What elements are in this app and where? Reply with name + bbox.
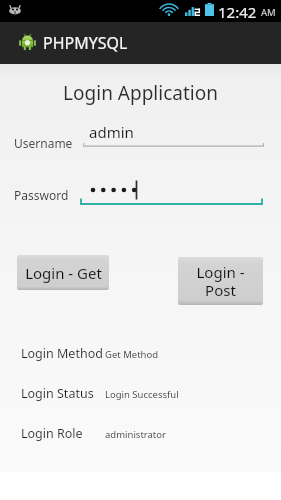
staticText: Login Role: [21, 425, 83, 442]
button[interactable]: Login - Post: [178, 257, 263, 305]
button[interactable]: Login Role: [0, 425, 281, 455]
staticText: Password: [14, 187, 69, 203]
staticText: Login Status: [21, 385, 94, 402]
button[interactable]: Login - Get: [17, 255, 109, 290]
button[interactable]: Login Method: [0, 345, 281, 375]
staticText: Login - Post: [196, 262, 245, 301]
staticText: Get Method: [105, 348, 159, 361]
staticText: Login - Get: [25, 263, 102, 283]
button[interactable]: Login Status: [0, 385, 281, 415]
staticText: Login Method: [21, 345, 103, 362]
staticText: AM: [261, 6, 276, 19]
staticText: admin: [89, 122, 134, 142]
staticText: 12:42: [218, 2, 257, 22]
other: USB debugging: [8, 5, 22, 15]
staticText: PHPMYSQL: [43, 32, 128, 54]
staticText: Username: [14, 135, 73, 151]
button[interactable]: PHPMYSQL: [0, 22, 281, 64]
staticText: Login Successful: [105, 388, 179, 401]
staticText: administrator: [105, 428, 166, 441]
staticText: Login Application: [0, 80, 281, 106]
